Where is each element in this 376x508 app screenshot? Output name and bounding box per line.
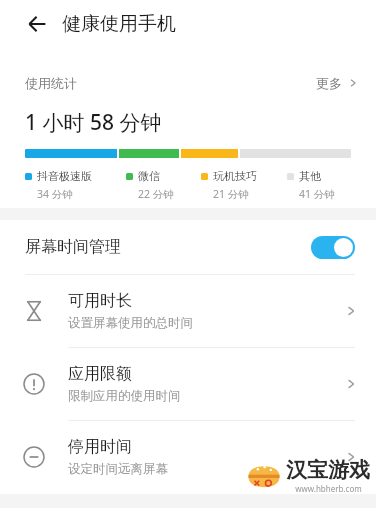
staticText: 可用时长 xyxy=(68,291,132,311)
button[interactable]: 屏幕时间管理开关 xyxy=(311,236,355,259)
staticText: 41 分钟 xyxy=(299,187,335,201)
staticText: 限制应用的使用时间 xyxy=(68,388,181,404)
button[interactable]: 可用时长 xyxy=(0,275,376,347)
button[interactable]: Back xyxy=(22,9,52,39)
button[interactable]: 使用统计 xyxy=(0,70,376,96)
staticText: 其他 xyxy=(299,169,321,183)
staticText: 22 分钟 xyxy=(138,187,174,201)
staticText: 停用时间 xyxy=(68,437,132,457)
staticText: 抖音极速版 xyxy=(37,169,92,183)
button[interactable]: 应用限额 xyxy=(0,348,376,420)
staticText: 健康使用手机 xyxy=(62,12,176,36)
staticText: 设置屏幕使用的总时间 xyxy=(68,315,193,331)
staticText: 使用统计 xyxy=(25,75,77,91)
button[interactable]: 屏幕时间管理 xyxy=(0,220,376,274)
staticText: 设定时间远离屏幕 xyxy=(68,461,168,477)
staticText: 屏幕时间管理 xyxy=(25,237,121,257)
staticText: 汉宝游戏 xyxy=(286,457,370,483)
staticText: 玩机技巧 xyxy=(213,169,257,183)
staticText: 1 小时 58 分钟 xyxy=(25,108,162,137)
staticText: 34 分钟 xyxy=(37,187,73,201)
staticText: 更多 xyxy=(316,75,342,91)
staticText: www.hbherb.com xyxy=(295,483,362,494)
staticText: 应用限额 xyxy=(68,364,132,384)
staticText: 21 分钟 xyxy=(213,187,249,201)
button[interactable]: 停用时间 xyxy=(0,421,376,493)
staticText: 微信 xyxy=(138,169,160,183)
